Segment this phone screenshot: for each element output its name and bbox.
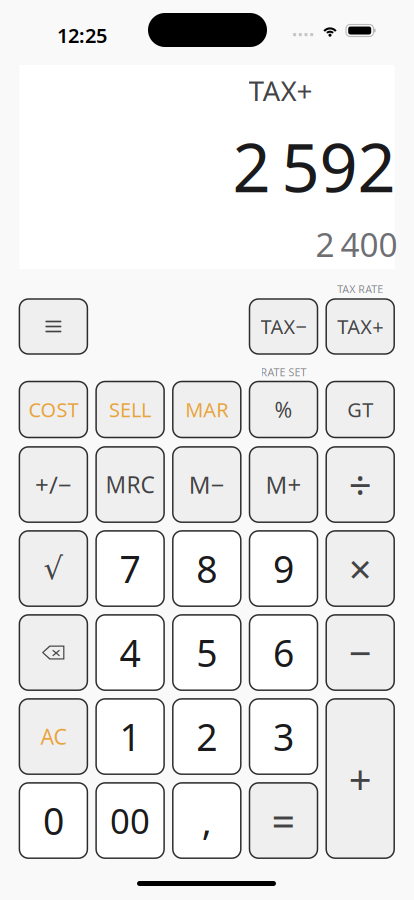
- button[interactable]: 1: [96, 699, 164, 774]
- staticText: TAX+: [249, 72, 313, 109]
- staticText: MAR: [185, 396, 228, 423]
- staticText: 5: [196, 628, 217, 677]
- staticText: ,: [202, 796, 212, 845]
- button[interactable]: TAX−: [249, 299, 317, 354]
- button[interactable]: SELL: [96, 381, 164, 437]
- button[interactable]: −: [326, 615, 394, 690]
- button[interactable]: COST: [19, 381, 87, 437]
- staticText: ÷: [349, 458, 372, 511]
- button[interactable]: Backspace: [19, 615, 87, 690]
- staticText: 2 400: [316, 222, 398, 266]
- button[interactable]: 4: [96, 615, 164, 690]
- button[interactable]: 6: [249, 615, 317, 690]
- staticText: 4: [120, 628, 141, 677]
- staticText: −: [349, 626, 372, 679]
- staticText: +: [349, 752, 372, 805]
- button[interactable]: MAR: [173, 381, 241, 437]
- staticText: 12:25: [57, 22, 107, 49]
- button[interactable]: TAX+: [326, 299, 394, 354]
- staticText: GT: [347, 396, 373, 423]
- staticText: M+: [265, 469, 301, 500]
- button[interactable]: MRC: [96, 447, 164, 522]
- staticText: 00: [110, 797, 150, 843]
- staticText: COST: [28, 396, 78, 423]
- staticText: AC: [40, 722, 66, 751]
- staticText: TAX−: [260, 313, 306, 340]
- button[interactable]: ×: [326, 531, 394, 606]
- button[interactable]: 2: [173, 699, 241, 774]
- staticText: +/−: [35, 469, 72, 500]
- button[interactable]: ÷: [326, 447, 394, 522]
- button[interactable]: Menu: [19, 299, 87, 354]
- staticText: 1: [120, 712, 141, 761]
- staticText: TAX RATE: [337, 282, 383, 296]
- button[interactable]: 0: [19, 783, 87, 858]
- button[interactable]: +/−: [19, 447, 87, 522]
- button[interactable]: 7: [96, 531, 164, 606]
- staticText: %: [274, 395, 292, 424]
- staticText: 3: [273, 712, 294, 761]
- button[interactable]: %: [249, 381, 317, 437]
- staticText: =: [271, 793, 295, 848]
- button[interactable]: M+: [249, 447, 317, 522]
- button[interactable]: 00: [96, 783, 164, 858]
- staticText: 9: [273, 544, 294, 593]
- staticText: 7: [120, 544, 141, 593]
- staticText: M−: [189, 469, 225, 500]
- button[interactable]: +: [326, 699, 394, 858]
- button[interactable]: 3: [249, 699, 317, 774]
- staticText: 8: [196, 544, 217, 593]
- staticText: 2 592: [233, 122, 396, 210]
- button[interactable]: ,: [173, 783, 241, 858]
- button[interactable]: M−: [173, 447, 241, 522]
- staticText: MRC: [106, 469, 155, 500]
- button[interactable]: 9: [249, 531, 317, 606]
- staticText: ×: [349, 542, 372, 595]
- button[interactable]: 8: [173, 531, 241, 606]
- staticText: 0: [43, 796, 64, 845]
- button[interactable]: =: [249, 783, 317, 858]
- staticText: √: [43, 551, 63, 586]
- staticText: SELL: [109, 396, 151, 423]
- staticText: 2: [196, 712, 217, 761]
- staticText: 6: [273, 628, 294, 677]
- button[interactable]: √: [19, 531, 87, 606]
- button[interactable]: GT: [326, 381, 394, 437]
- staticText: RATE SET: [260, 365, 306, 379]
- staticText: TAX+: [337, 313, 383, 340]
- button[interactable]: AC: [19, 699, 87, 774]
- button[interactable]: 5: [173, 615, 241, 690]
